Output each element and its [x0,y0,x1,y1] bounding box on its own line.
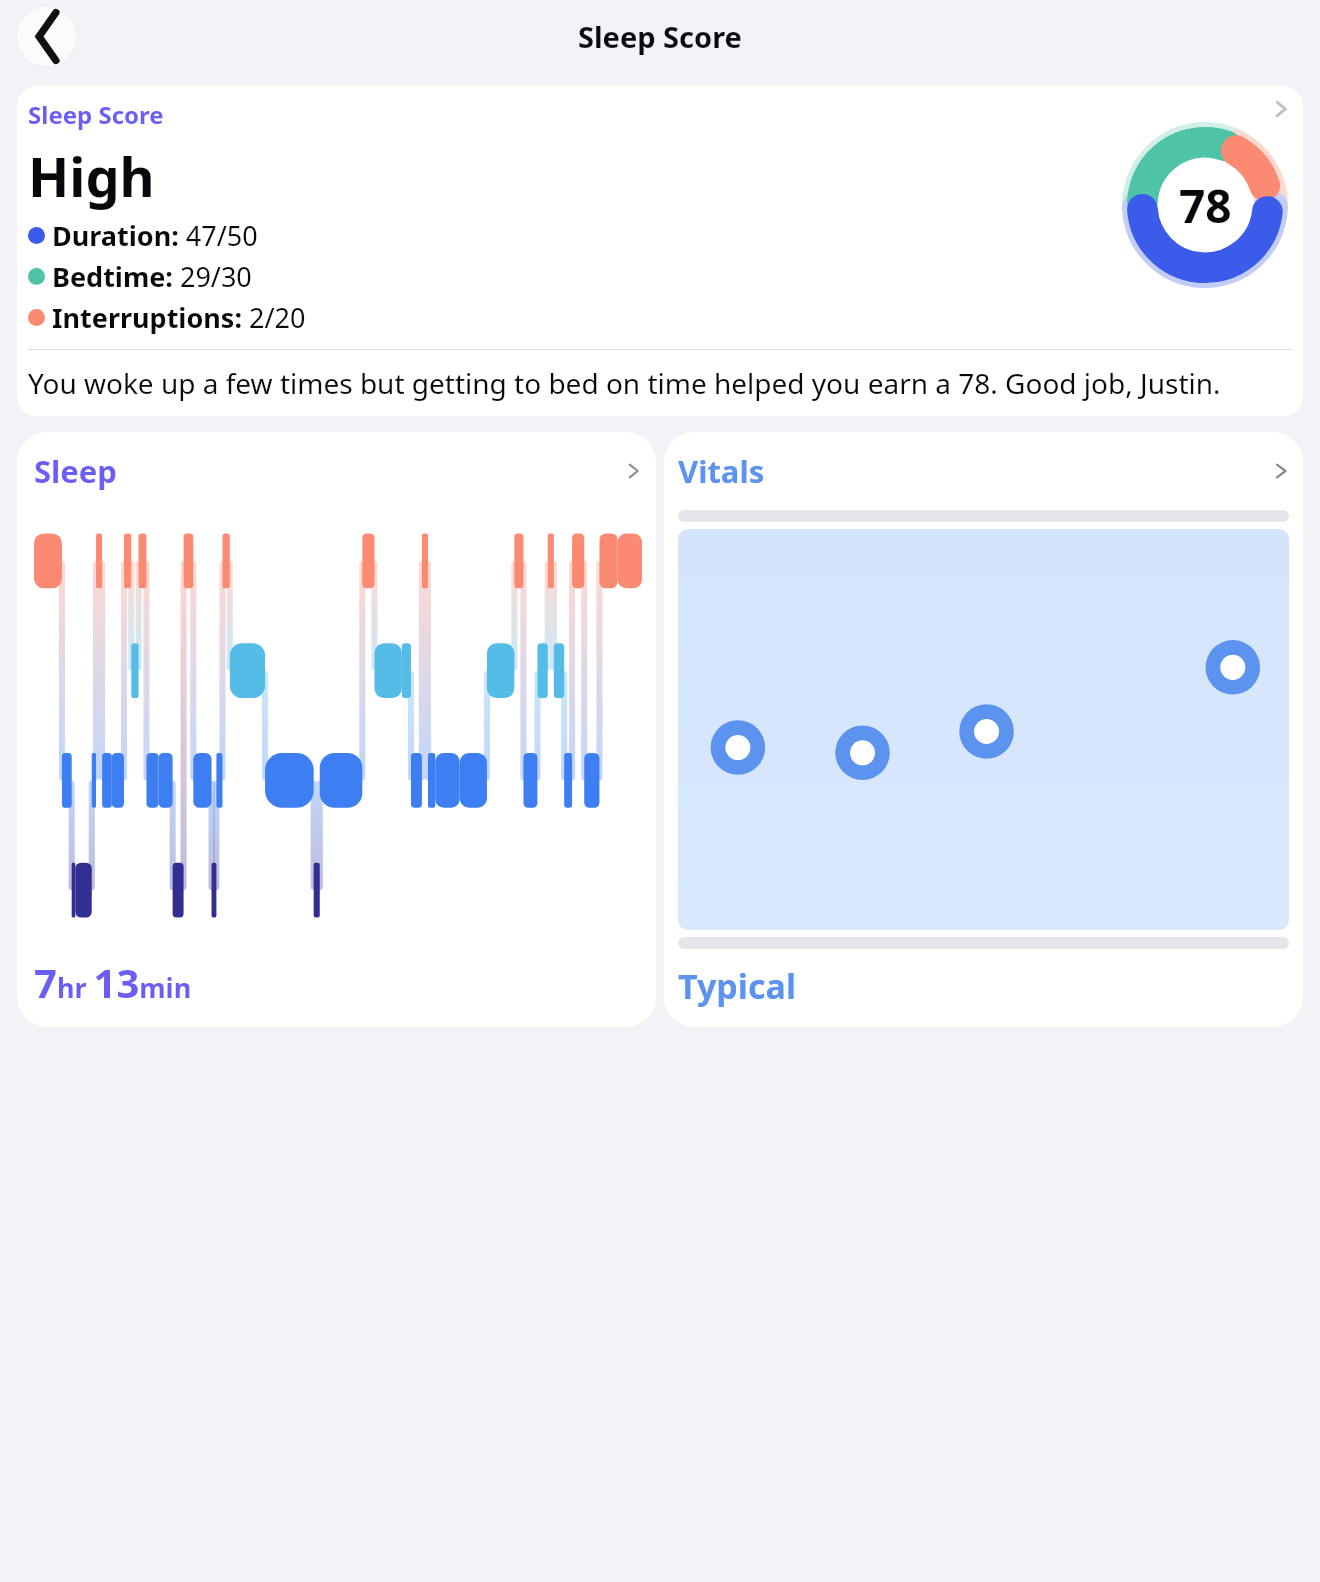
staticText: You woke up a few times but getting to b… [28,364,1221,402]
staticText: Typical [678,963,797,1009]
staticText: Bedtime: 29/30 [52,258,252,295]
staticText: Duration: 47/50 [52,217,258,254]
button[interactable]: Sleep [34,450,642,1009]
staticText: 7hr 13min [34,955,192,1009]
staticText: Sleep Score [28,98,164,131]
button[interactable]: Back [17,7,76,66]
staticText: 78 [1179,174,1232,237]
button[interactable]: Sleep Score [17,86,1303,416]
staticText: Interruptions: 2/20 [52,299,306,336]
staticText: Vitals [678,450,765,492]
staticText: High [28,139,155,213]
button[interactable]: Vitals [678,450,1289,1009]
staticText: Sleep Score [578,17,742,56]
staticText: Sleep [34,450,117,492]
